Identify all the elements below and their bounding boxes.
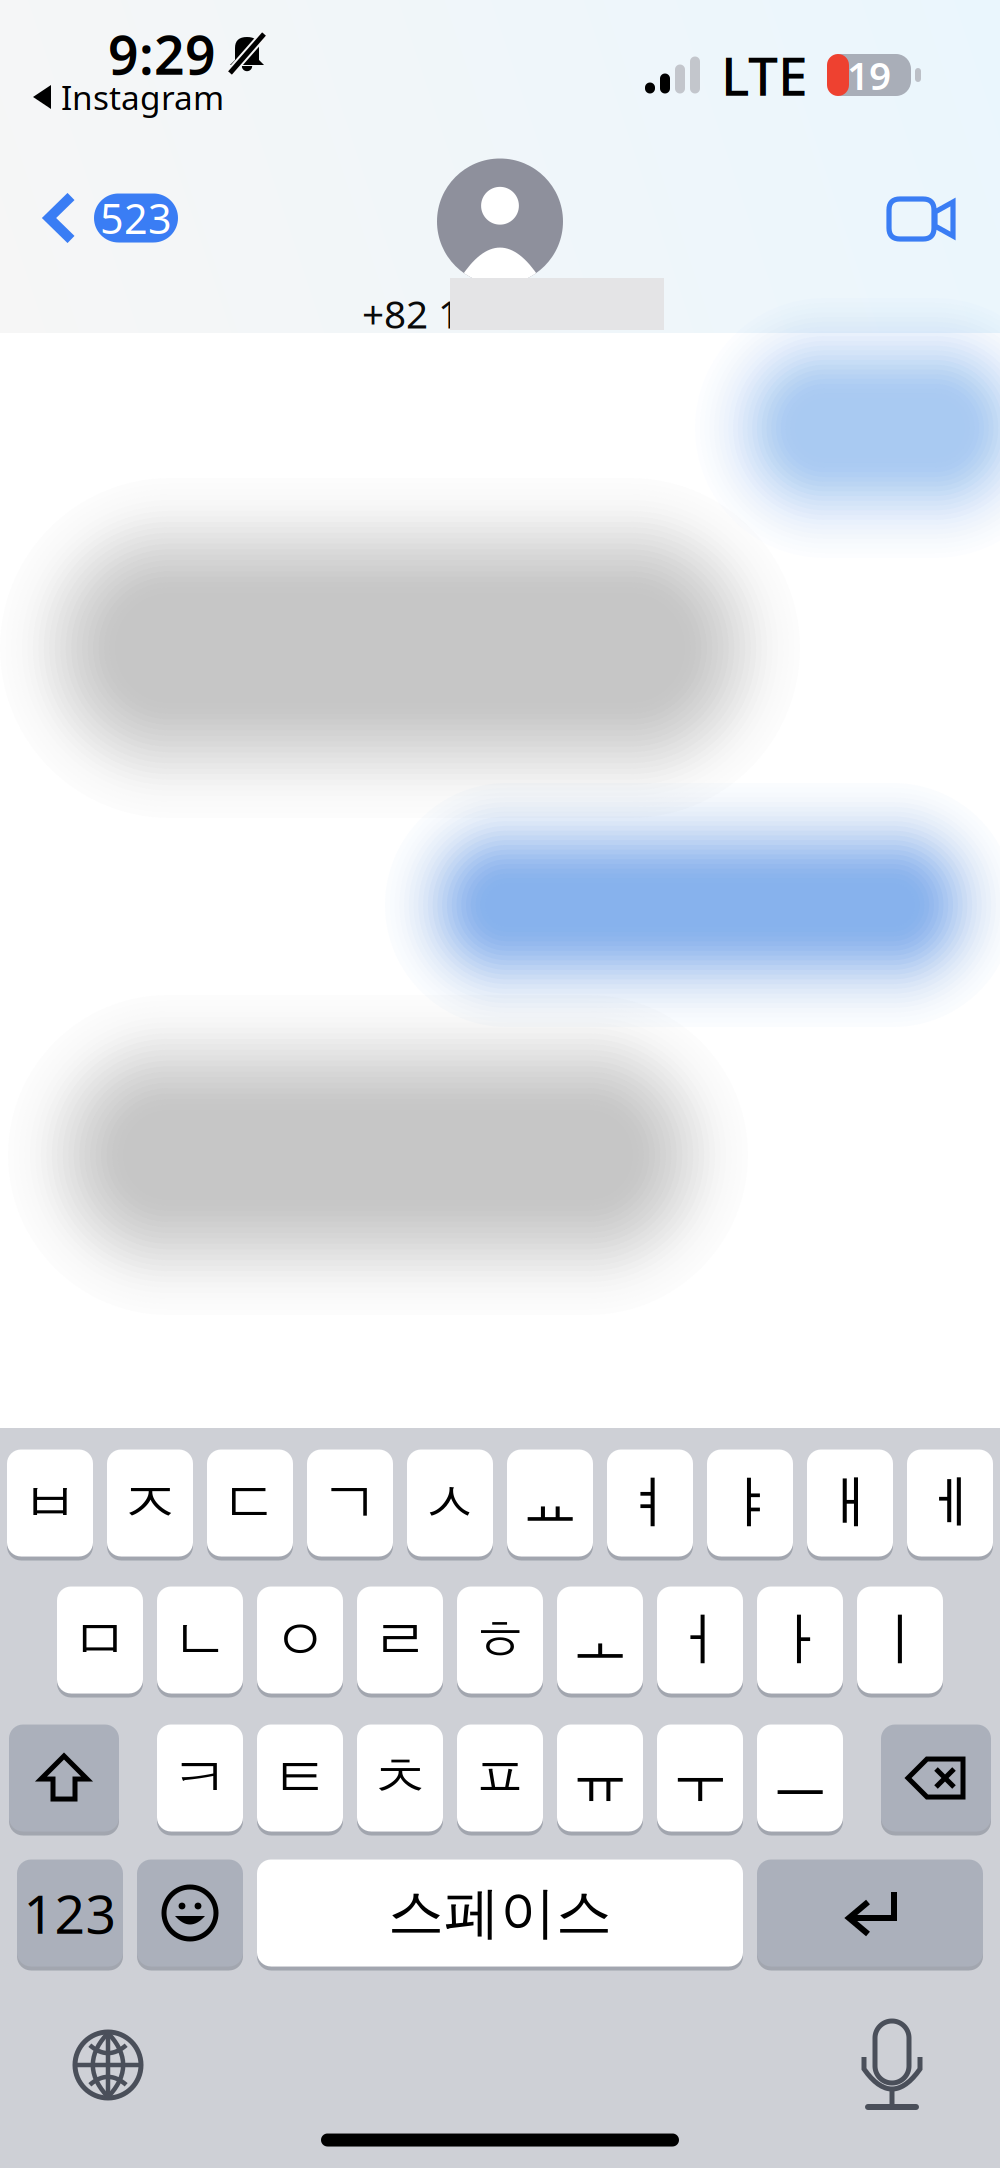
button[interactable]: ㅈ: [107, 1447, 193, 1558]
staticText: ㄱ: [321, 1468, 378, 1538]
button[interactable]: ㅕ: [607, 1447, 693, 1558]
button[interactable]: ㅁ: [57, 1584, 143, 1695]
staticText: 19: [847, 49, 891, 101]
button[interactable]: ㅔ: [907, 1447, 993, 1558]
button[interactable]: ㅜ: [657, 1722, 743, 1833]
staticText: 스페이스: [388, 1879, 612, 1947]
staticText: ㅂ: [21, 1468, 78, 1538]
staticText: ㅔ: [921, 1468, 978, 1538]
button[interactable]: ㅇ: [257, 1584, 343, 1695]
button[interactable]: ㅓ: [657, 1584, 743, 1695]
button[interactable]: ㅡ: [757, 1722, 843, 1833]
staticText: ㅏ: [771, 1605, 828, 1675]
button[interactable]: +82 10: [0, 158, 1000, 335]
staticText: ㅐ: [821, 1468, 878, 1538]
button[interactable]: ㄹ: [357, 1584, 443, 1695]
staticText: ㅣ: [871, 1605, 928, 1675]
button[interactable]: Return: [757, 1857, 983, 1968]
staticText: ㄴ: [171, 1605, 228, 1675]
staticText: 523: [100, 191, 172, 245]
staticText: ㅈ: [121, 1468, 178, 1538]
staticText: ㅇ: [271, 1605, 328, 1675]
staticText: ㅡ: [771, 1743, 828, 1813]
button[interactable]: Dictation: [837, 2017, 947, 2113]
staticText: ㅓ: [671, 1605, 728, 1675]
staticText: ㅋ: [171, 1743, 228, 1813]
staticText: 123: [23, 1878, 116, 1948]
button[interactable]: ㅊ: [357, 1722, 443, 1833]
staticText: ㅅ: [421, 1468, 478, 1538]
button[interactable]: ㅂ: [7, 1447, 93, 1558]
staticText: ㅠ: [571, 1743, 628, 1813]
button[interactable]: ㅍ: [457, 1722, 543, 1833]
staticText: ㅎ: [471, 1605, 528, 1675]
staticText: ㄷ: [221, 1468, 278, 1538]
staticText: ㅜ: [671, 1743, 728, 1813]
button[interactable]: Shift: [9, 1722, 119, 1833]
button[interactable]: ㅋ: [157, 1722, 243, 1833]
button[interactable]: ㅏ: [757, 1584, 843, 1695]
staticText: ㅊ: [371, 1743, 428, 1813]
staticText: +82 10: [362, 288, 482, 339]
staticText: ㅌ: [271, 1743, 328, 1813]
staticText: ㅛ: [521, 1468, 578, 1538]
button[interactable]: ㅗ: [557, 1584, 643, 1695]
button[interactable]: 123: [17, 1857, 123, 1968]
button[interactable]: ㅎ: [457, 1584, 543, 1695]
staticText: ㅍ: [471, 1743, 528, 1813]
staticText: ㅗ: [571, 1605, 628, 1675]
button[interactable]: 523: [0, 163, 300, 273]
staticText: ㅕ: [621, 1468, 678, 1538]
button[interactable]: ㄱ: [307, 1447, 393, 1558]
button[interactable]: ㅠ: [557, 1722, 643, 1833]
button[interactable]: ㅌ: [257, 1722, 343, 1833]
button[interactable]: Emoji: [137, 1857, 243, 1968]
button[interactable]: 스페이스: [257, 1857, 743, 1968]
button[interactable]: ㄷ: [207, 1447, 293, 1558]
staticText: 9:29: [108, 19, 216, 89]
staticText: Instagram: [61, 75, 224, 119]
button[interactable]: FaceTime: [862, 169, 980, 269]
staticText: ㄹ: [371, 1605, 428, 1675]
button[interactable]: Next keyboard: [53, 2017, 163, 2113]
staticText: LTE: [721, 40, 808, 110]
staticText: ㅑ: [721, 1468, 778, 1538]
staticText: ㅁ: [71, 1605, 128, 1675]
button[interactable]: ㅅ: [407, 1447, 493, 1558]
button[interactable]: ㅛ: [507, 1447, 593, 1558]
button[interactable]: ㅐ: [807, 1447, 893, 1558]
button[interactable]: Delete: [881, 1722, 991, 1833]
button[interactable]: ㅣ: [857, 1584, 943, 1695]
button[interactable]: ㅑ: [707, 1447, 793, 1558]
button[interactable]: ㄴ: [157, 1584, 243, 1695]
